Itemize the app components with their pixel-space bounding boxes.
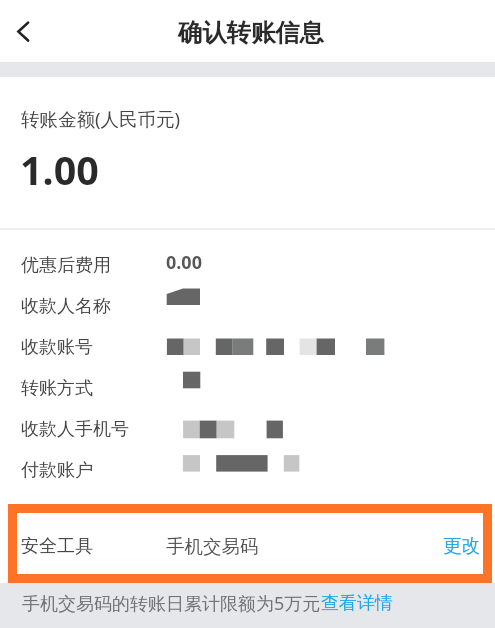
button[interactable]: 收款人名称 — [0, 284, 495, 325]
button[interactable]: 收款人手机号 — [0, 407, 495, 448]
button[interactable]: 查看详情 — [321, 592, 393, 615]
staticText: 收款人名称 — [21, 295, 111, 318]
staticText: 付款账户 — [21, 459, 93, 482]
staticText: 转账方式 — [21, 377, 93, 400]
button[interactable]: 安全工具 — [17, 513, 483, 574]
button[interactable]: 收款账号 — [0, 325, 495, 366]
staticText: 手机交易码的转账日累计限额为5万元 — [22, 591, 321, 616]
staticText: 优惠后费用 — [21, 254, 111, 277]
button[interactable]: 转账方式 — [0, 366, 495, 407]
button[interactable]: Back — [4, 10, 50, 56]
staticText: 安全工具 — [21, 535, 93, 558]
staticText: 1.00 — [20, 143, 99, 197]
staticText: 确认转账信息 — [178, 18, 324, 49]
staticText: 0.00 — [166, 250, 202, 275]
staticText: 收款账号 — [21, 336, 93, 359]
button[interactable]: 优惠后费用 — [0, 243, 495, 284]
staticText: 手机交易码 — [166, 535, 259, 558]
staticText: 转账金额(人民币元) — [21, 106, 181, 131]
button[interactable]: 付款账户 — [0, 448, 495, 489]
staticText: 收款人手机号 — [21, 418, 129, 441]
button[interactable]: 更改 — [444, 513, 494, 574]
staticText: 更改 — [443, 534, 480, 557]
